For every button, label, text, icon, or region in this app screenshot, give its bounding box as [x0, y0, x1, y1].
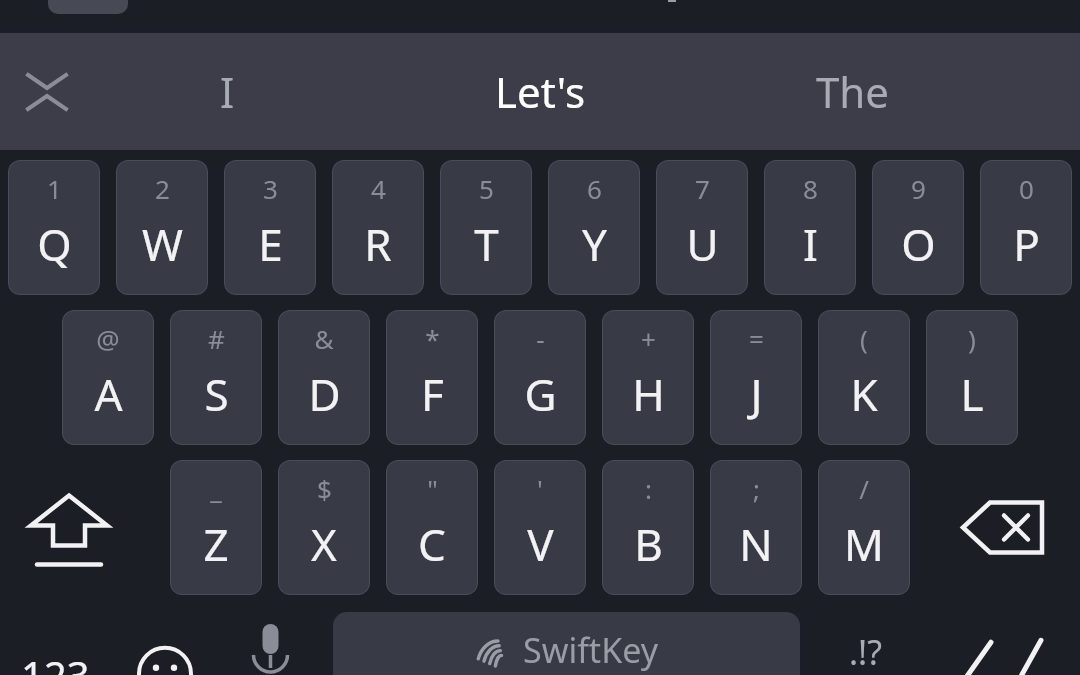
button[interactable]: 6 — [548, 160, 640, 295]
staticText: J — [750, 364, 763, 424]
button[interactable]: Space — [333, 612, 800, 675]
staticText: $ — [317, 471, 332, 506]
staticText: The — [816, 63, 889, 120]
staticText: # — [208, 321, 225, 356]
staticText: F — [421, 364, 444, 424]
button[interactable]: * — [386, 310, 478, 445]
staticText: H — [632, 364, 665, 424]
staticText: W — [142, 214, 183, 274]
button[interactable]: : — [602, 460, 694, 595]
staticText: ; — [753, 471, 760, 506]
staticText: E — [258, 214, 283, 274]
staticText: L — [960, 364, 984, 424]
staticText: & — [314, 321, 334, 356]
staticText: O — [901, 214, 936, 274]
staticText: R — [364, 214, 392, 274]
staticText: U — [686, 214, 719, 274]
staticText: * — [425, 321, 440, 356]
button[interactable]: Emoji — [120, 612, 210, 675]
staticText: K — [850, 364, 878, 424]
staticText: ) — [968, 321, 976, 356]
button[interactable]: 9 — [872, 160, 964, 295]
button[interactable]: 7 — [656, 160, 748, 295]
staticText: @ — [96, 321, 120, 356]
staticText: S — [204, 364, 229, 424]
staticText: C — [418, 514, 446, 574]
staticText: + — [641, 321, 656, 356]
staticText: ( — [860, 321, 868, 356]
button[interactable]: 3 — [224, 160, 316, 295]
staticText: / — [859, 471, 869, 506]
button[interactable]: _ — [170, 460, 262, 595]
staticText: _ — [210, 471, 222, 506]
staticText: 7 — [695, 171, 710, 206]
button[interactable]: Shift — [14, 460, 124, 595]
button[interactable]: Let's — [425, 33, 655, 150]
staticText: 4 — [371, 171, 386, 206]
staticText: 5 — [479, 171, 494, 206]
button[interactable]: @ — [62, 310, 154, 445]
staticText: A — [94, 364, 123, 424]
button[interactable]: 5 — [440, 160, 532, 295]
staticText: = — [749, 321, 764, 356]
button[interactable]: $ — [278, 460, 370, 595]
staticText: X — [311, 514, 337, 574]
button[interactable]: 0 — [980, 160, 1072, 295]
staticText: B — [634, 514, 663, 574]
staticText: 8 — [803, 171, 818, 206]
button[interactable]: Enter — [940, 612, 1070, 675]
button[interactable] — [48, 0, 128, 14]
staticText: .!? — [849, 629, 883, 675]
staticText: 0 — [1019, 171, 1034, 206]
button[interactable]: " — [386, 460, 478, 595]
staticText: V — [527, 514, 554, 574]
button[interactable]: # — [170, 310, 262, 445]
button[interactable]: ; — [710, 460, 802, 595]
staticText: N — [739, 514, 773, 574]
button[interactable]: The — [740, 33, 965, 150]
staticText: ' — [537, 471, 543, 506]
button[interactable]: .!? — [818, 612, 913, 675]
button[interactable]: + — [602, 310, 694, 445]
button[interactable]: & — [278, 310, 370, 445]
button[interactable]: ) — [926, 310, 1018, 445]
button[interactable]: ( — [818, 310, 910, 445]
button[interactable]: I — [115, 33, 340, 150]
button[interactable]: 123 — [0, 612, 110, 675]
staticText: 1 — [47, 171, 62, 206]
button[interactable]: Collapse toolbar — [8, 53, 86, 131]
staticText: P — [1013, 214, 1040, 274]
button[interactable]: / — [818, 460, 910, 595]
button[interactable]: Backspace — [955, 460, 1065, 595]
staticText: Z — [203, 514, 229, 574]
staticText: D — [308, 364, 341, 424]
staticText: G — [524, 364, 557, 424]
staticText: " — [427, 471, 438, 506]
staticText: 9 — [911, 171, 926, 206]
staticText: I — [220, 63, 235, 120]
staticText: Q — [37, 214, 72, 274]
staticText: : — [645, 471, 652, 506]
staticText: 2 — [155, 171, 170, 206]
staticText: - — [536, 321, 545, 356]
staticText: M — [844, 514, 884, 574]
staticText: Let's — [495, 63, 586, 120]
button[interactable]: = — [710, 310, 802, 445]
staticText: 6 — [587, 171, 602, 206]
button[interactable]: 2 — [116, 160, 208, 295]
button[interactable]: Voice input — [228, 612, 313, 675]
staticText: Y — [582, 214, 607, 274]
button[interactable]: - — [494, 310, 586, 445]
button[interactable]: 1 — [8, 160, 100, 295]
staticText: 123 — [21, 648, 90, 675]
staticText: 3 — [263, 171, 278, 206]
button[interactable]: ' — [494, 460, 586, 595]
button[interactable]: 8 — [764, 160, 856, 295]
button[interactable]: 4 — [332, 160, 424, 295]
staticText: T — [474, 214, 499, 274]
staticText: I — [803, 214, 818, 274]
staticText: SwiftKey — [523, 627, 659, 673]
